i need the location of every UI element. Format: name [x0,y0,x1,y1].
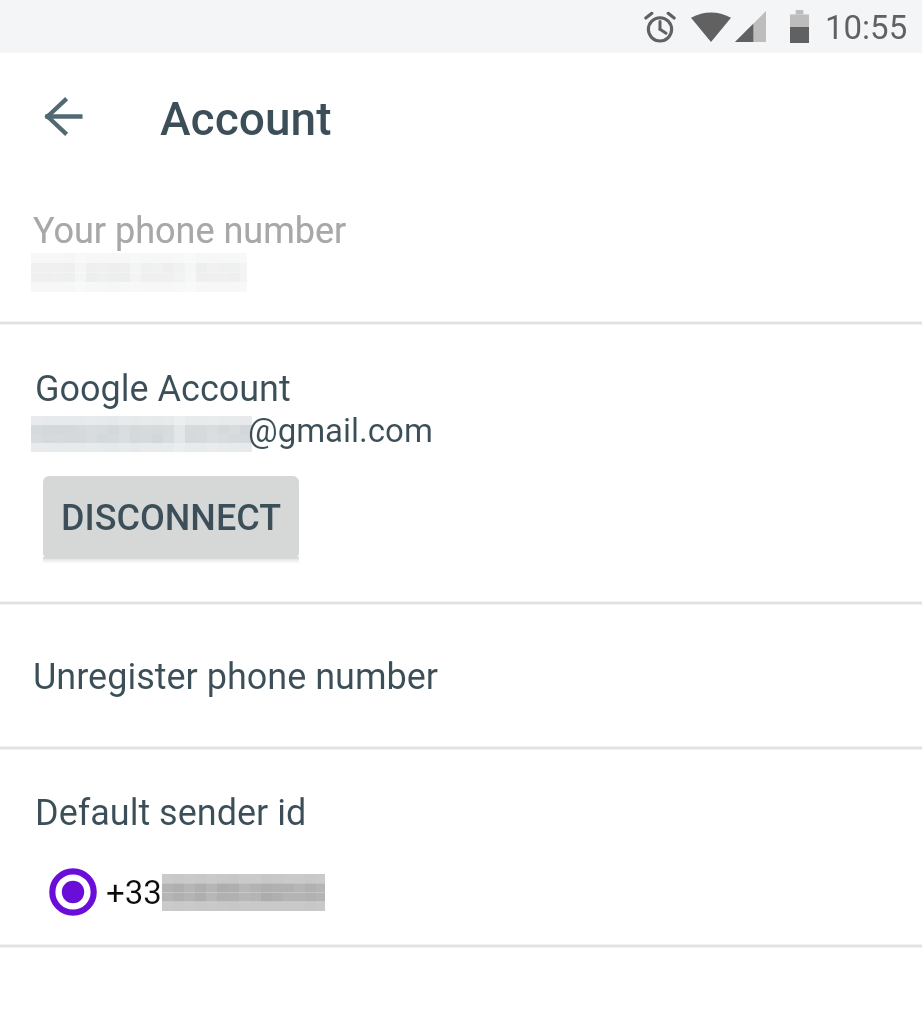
staticText: +33 [106,873,162,912]
staticText: @gmail.com [248,411,433,450]
staticText: Google Account [35,368,291,410]
button[interactable]: Back [32,85,94,147]
button[interactable]: Unregister phone number [0,607,922,747]
button[interactable]: DISCONNECT [43,476,299,559]
staticText: DISCONNECT [61,497,282,539]
staticText: Account [160,92,332,146]
staticText: Your phone number [33,210,347,252]
button[interactable]: +33 [0,850,922,934]
button[interactable]: Your phone number [0,156,922,322]
staticText: 10:55 [825,8,908,47]
staticText: Unregister phone number [33,656,438,698]
staticText: Default sender id [35,792,307,834]
